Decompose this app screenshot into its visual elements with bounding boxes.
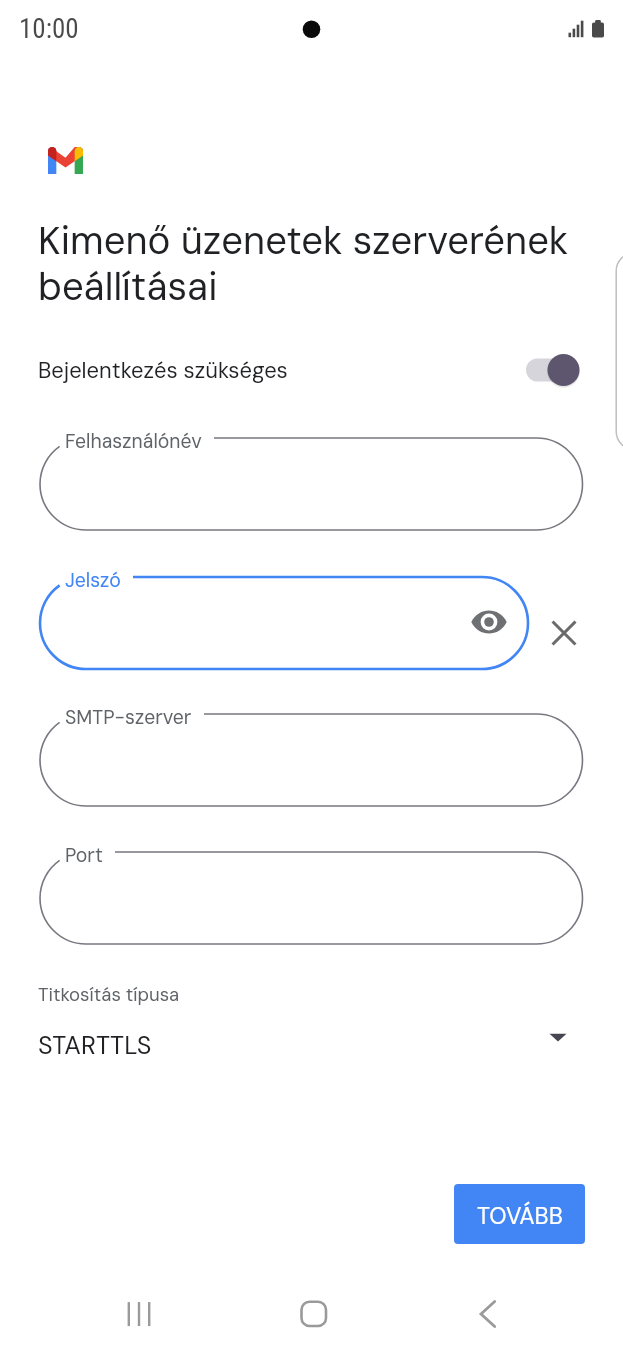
button[interactable]: Recent apps [103, 1279, 175, 1351]
staticText: Bejelentkezés szükséges [38, 356, 288, 385]
button[interactable]: TOVÁBB [454, 1184, 585, 1244]
staticText: TOVÁBB [477, 1201, 563, 1231]
staticText: Jelszó [65, 568, 121, 593]
button[interactable]: Show password [465, 598, 513, 646]
staticText: Port [65, 843, 103, 868]
button[interactable]: Bejelentkezés szükséges [0, 334, 623, 406]
staticText: Titkosítás típusa [38, 983, 180, 1007]
button[interactable]: Felhasználónév [32, 422, 591, 546]
button[interactable]: Home [278, 1279, 350, 1351]
button[interactable]: Back [452, 1279, 524, 1351]
staticText: SMTP-szerver [65, 705, 192, 730]
staticText: 10:00 [19, 13, 79, 45]
button[interactable]: Titkosítás típusa [0, 965, 623, 1075]
staticText: Kimenő üzenetek szerverének beállításai [38, 216, 583, 312]
button[interactable]: Clear [540, 609, 588, 657]
button[interactable]: Jelszó [32, 561, 536, 685]
staticText: Felhasználónév [65, 429, 202, 454]
button[interactable]: Port [32, 836, 591, 960]
staticText: STARTTLS [38, 1029, 152, 1062]
button[interactable]: SMTP-szerver [32, 698, 591, 822]
